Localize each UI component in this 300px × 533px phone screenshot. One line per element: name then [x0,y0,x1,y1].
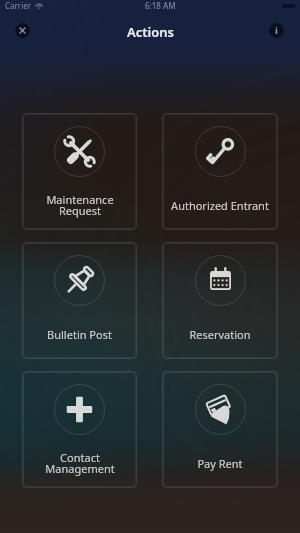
button[interactable]: Pay Rent [162,371,278,488]
button[interactable]: Authorized Entrant [162,113,278,230]
button[interactable]: Close [15,23,30,38]
staticText: Maintenance Request [46,192,114,219]
button[interactable]: Reservation [162,242,278,359]
staticText: Bulletin Post [47,327,112,342]
button[interactable]: Contact Management [22,371,137,488]
staticText: 6:18 AM [145,0,176,11]
staticText: Pay Rent [197,456,243,471]
staticText: Actions [127,23,174,41]
button[interactable]: Maintenance Request [22,113,137,230]
staticText: Contact Management [45,450,115,477]
staticText: Authorized Entrant [171,198,269,213]
staticText: Reservation [189,327,251,342]
staticText: Carrier [5,0,32,11]
button[interactable]: Bulletin Post [22,242,137,359]
button[interactable]: Info [269,23,284,38]
staticText: i [275,24,278,37]
